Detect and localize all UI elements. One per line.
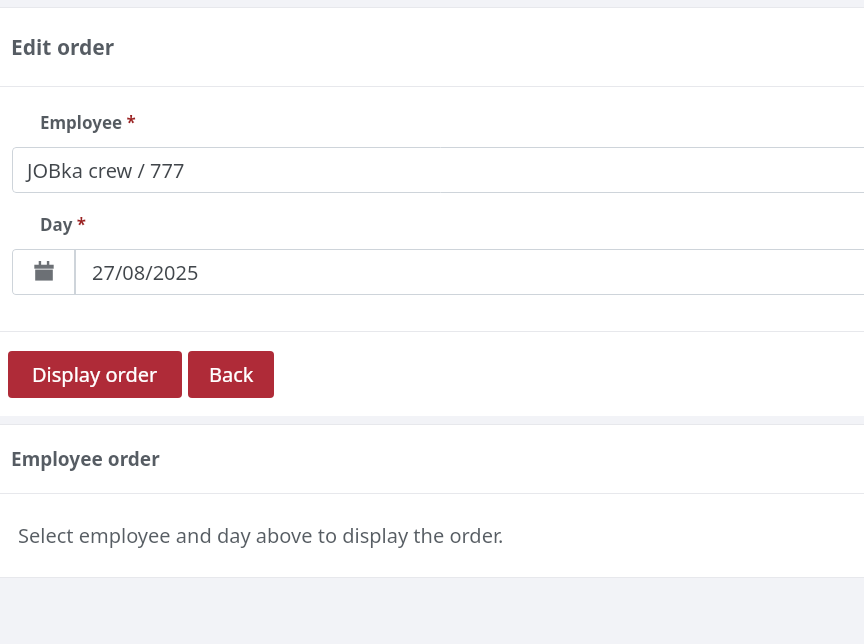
button[interactable]: Back (188, 351, 274, 398)
staticText: JOBka crew / 777 (27, 157, 185, 184)
staticText: Edit order (11, 33, 115, 62)
button[interactable]: Pick date (12, 249, 75, 295)
button[interactable]: 27/08/2025 (75, 249, 864, 295)
staticText: Back (209, 361, 254, 388)
button[interactable]: JOBka crew / 777 (12, 147, 864, 193)
staticText: Display order (32, 361, 158, 388)
staticText: Employee * (40, 111, 136, 134)
staticText: 27/08/2025 (92, 259, 199, 286)
staticText: Employee order (11, 446, 160, 472)
staticText: Day * (40, 213, 86, 236)
button[interactable]: Display order (8, 351, 182, 398)
staticText: Select employee and day above to display… (18, 522, 504, 549)
